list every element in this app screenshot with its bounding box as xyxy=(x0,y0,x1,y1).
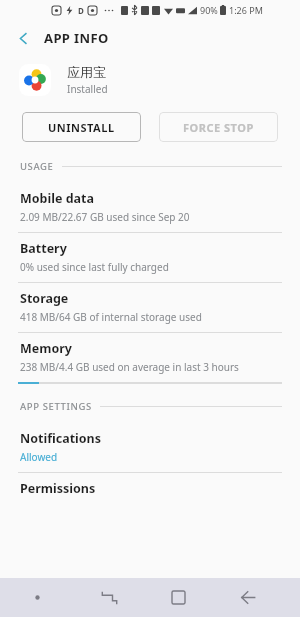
staticText: 0% used since last fully charged xyxy=(20,260,169,274)
staticText: D xyxy=(78,5,84,16)
staticText: Installed xyxy=(67,82,108,96)
staticText: Battery xyxy=(20,240,67,257)
staticText: APP INFO xyxy=(44,29,109,47)
button[interactable]: Back xyxy=(213,578,282,617)
button[interactable]: Navigate up xyxy=(10,25,36,51)
staticText: 应用宝 xyxy=(67,64,106,80)
button[interactable]: Recent apps xyxy=(75,578,144,617)
staticText: Mobile data xyxy=(20,190,94,207)
button[interactable]: Battery xyxy=(0,233,300,282)
staticText: Notifications xyxy=(20,430,102,447)
staticText: APP SETTINGS xyxy=(20,400,92,413)
staticText: 238 MB/4.4 GB used on average in last 3 … xyxy=(20,360,239,374)
button[interactable]: FORCE STOP xyxy=(159,112,278,142)
button[interactable]: Hide navigation bar xyxy=(0,578,75,617)
button[interactable]: Home xyxy=(144,578,213,617)
staticText: 1:26 PM xyxy=(229,4,263,16)
staticText: 418 MB/64 GB of internal storage used xyxy=(20,310,202,324)
button[interactable]: Notifications xyxy=(0,423,300,472)
button[interactable]: Memory xyxy=(0,333,300,382)
staticText: Memory xyxy=(20,340,72,357)
button[interactable]: Permissions xyxy=(0,473,300,505)
staticText: Permissions xyxy=(20,480,96,497)
button[interactable]: Mobile data xyxy=(0,183,300,232)
staticText: 90% xyxy=(200,4,218,16)
button[interactable]: 应用宝 xyxy=(0,55,300,105)
staticText: 2.09 MB/22.67 GB used since Sep 20 xyxy=(20,210,190,224)
staticText: Storage xyxy=(20,290,69,307)
staticText: Allowed xyxy=(20,450,58,464)
staticText: UNINSTALL xyxy=(48,120,115,135)
button[interactable]: Storage xyxy=(0,283,300,332)
button[interactable]: UNINSTALL xyxy=(22,112,141,142)
staticText: USAGE xyxy=(20,160,54,173)
staticText: FORCE STOP xyxy=(183,120,254,135)
